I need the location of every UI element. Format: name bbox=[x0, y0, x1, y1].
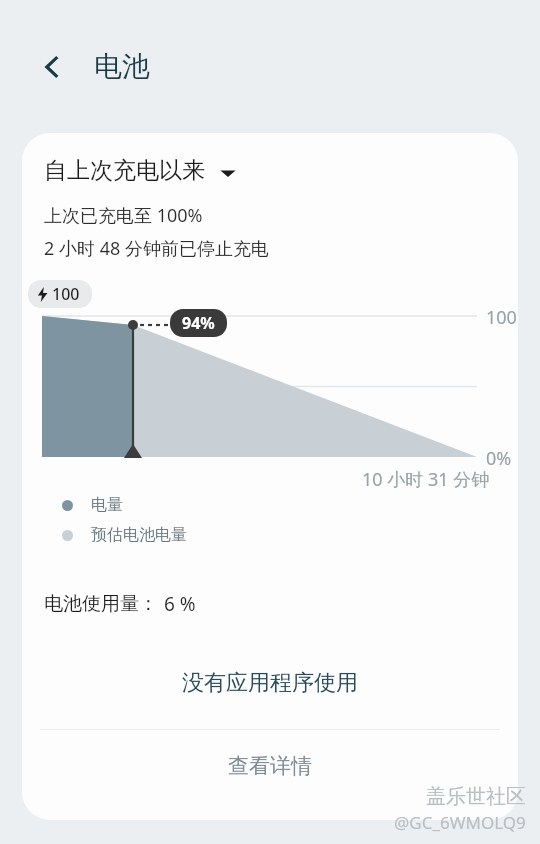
staticText: 电量 bbox=[91, 495, 123, 515]
staticText: 2 小时 48 分钟前已停止充电 bbox=[44, 236, 269, 261]
staticText: 10 小时 31 分钟 bbox=[362, 467, 490, 492]
staticText: 电池 bbox=[94, 49, 150, 84]
button[interactable]: 没有应用程序使用 bbox=[22, 659, 518, 707]
staticText: 上次已充电至 100% bbox=[44, 203, 203, 228]
staticText: 94% bbox=[182, 312, 215, 334]
staticText: 电池使用量： bbox=[44, 592, 158, 616]
button[interactable]: 查看详情 bbox=[22, 730, 518, 802]
staticText: @GC_6WMOLQ9 bbox=[394, 811, 526, 834]
staticText: 没有应用程序使用 bbox=[182, 669, 358, 697]
staticText: 100 bbox=[52, 283, 80, 305]
staticText: 预估电池电量 bbox=[91, 525, 187, 545]
button[interactable]: 自上次充电以来 bbox=[44, 156, 237, 185]
staticText: 100 bbox=[486, 305, 517, 330]
staticText: 0% bbox=[486, 446, 512, 471]
staticText: 盖乐世社区 bbox=[426, 784, 526, 809]
staticText: 6 % bbox=[164, 591, 196, 617]
staticText: 自上次充电以来 bbox=[44, 156, 205, 185]
button[interactable]: Back bbox=[30, 45, 74, 89]
staticText: 查看详情 bbox=[228, 753, 312, 779]
